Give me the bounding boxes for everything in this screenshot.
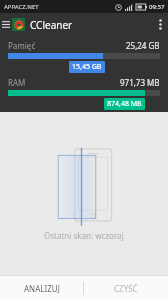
button[interactable]: ANALIZUJ: [0, 276, 83, 300]
button[interactable]: More options: [152, 13, 168, 36]
staticText: 09:57: [149, 3, 165, 11]
staticText: 874,48 MB: [107, 99, 142, 109]
button[interactable]: Open navigation drawer: [0, 13, 12, 36]
staticText: Ostatni skan: wczoraj: [44, 230, 124, 241]
staticText: CZYŚĆ: [114, 283, 138, 294]
staticText: APPACZ.NET: [4, 3, 39, 11]
staticText: RAM: [8, 77, 26, 88]
staticText: 971,73 MB: [120, 77, 160, 88]
staticText: 25,24 GB: [126, 40, 160, 51]
staticText: ANALIZUJ: [24, 283, 60, 294]
staticText: 15,45 GB: [72, 62, 102, 72]
staticText: Pamięć: [8, 40, 36, 51]
button[interactable]: CZYŚĆ: [84, 276, 168, 300]
staticText: CCleaner: [30, 18, 73, 32]
